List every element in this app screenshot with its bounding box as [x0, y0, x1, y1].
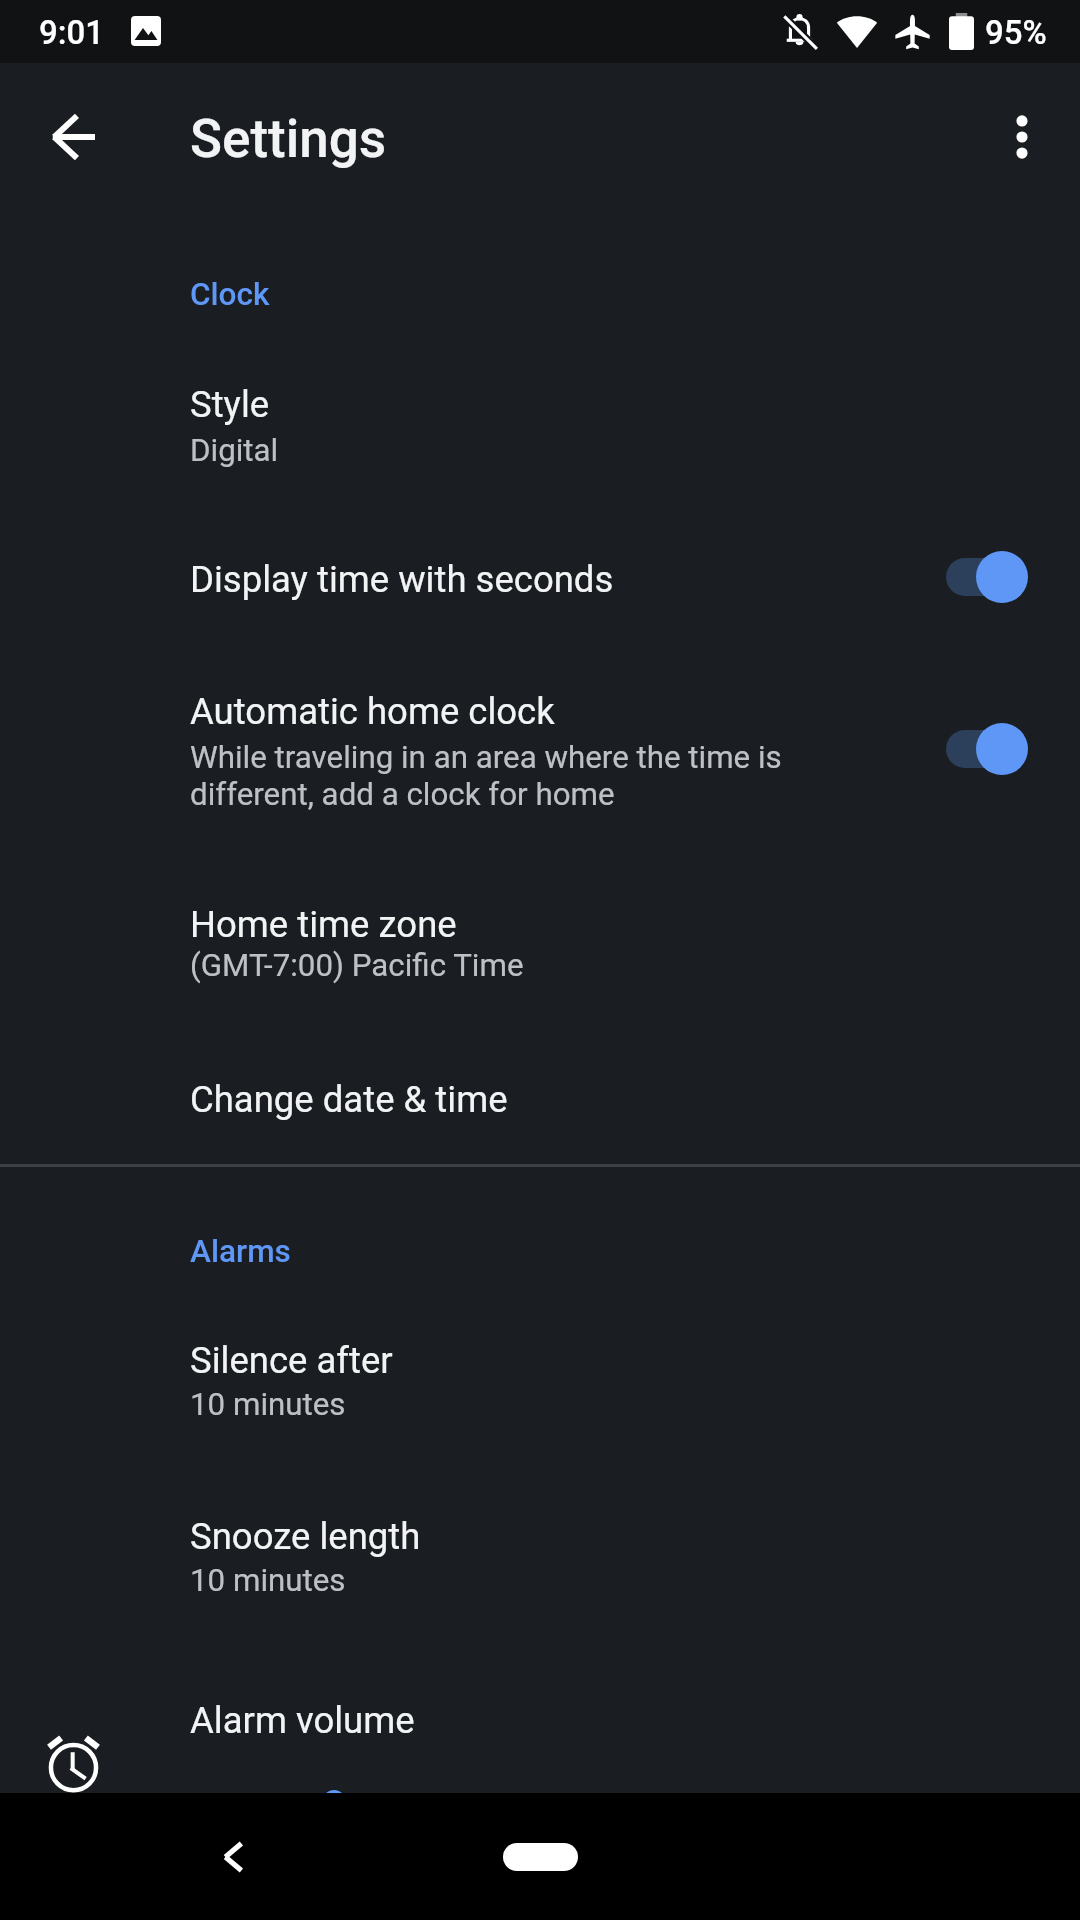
button[interactable]: Home time zone [0, 868, 1080, 1032]
staticText: 95% [985, 13, 1047, 52]
staticText: Alarms [190, 1233, 291, 1270]
staticText: Snooze length [190, 1515, 421, 1558]
button[interactable]: More options [980, 95, 1064, 179]
staticText: While traveling in an area where the tim… [190, 739, 782, 812]
staticText: Home time zone [190, 903, 457, 946]
staticText: (GMT-7:00) Pacific Time [190, 947, 524, 984]
staticText: Style [190, 383, 270, 426]
staticText: Alarm volume [190, 1699, 415, 1742]
button[interactable]: Silence after [0, 1290, 1080, 1458]
button[interactable]: Display time with seconds [0, 492, 1080, 658]
staticText: 10 minutes [190, 1562, 346, 1599]
staticText: Digital [190, 432, 279, 469]
staticText: Automatic home clock [190, 690, 555, 733]
staticText: Silence after [190, 1339, 393, 1382]
staticText: Display time with seconds [190, 558, 614, 601]
button[interactable]: Alarm volume [0, 1634, 1080, 1793]
staticText: Change date & time [190, 1078, 508, 1121]
button[interactable]: Snooze length [0, 1458, 1080, 1634]
staticText: 9:01 [39, 13, 105, 52]
button[interactable]: Home [503, 1843, 578, 1871]
staticText: 10 minutes [190, 1386, 346, 1423]
button[interactable]: Change date & time [0, 1032, 1080, 1164]
button[interactable]: Automatic home clock [0, 658, 1080, 868]
staticText: Settings [190, 108, 387, 170]
button[interactable]: Toggle [938, 529, 1034, 625]
button[interactable]: Back [190, 1814, 276, 1900]
button[interactable]: Back [31, 95, 115, 179]
button[interactable]: Style [0, 330, 1080, 492]
button[interactable]: Toggle [938, 701, 1034, 797]
staticText: Clock [190, 276, 270, 313]
